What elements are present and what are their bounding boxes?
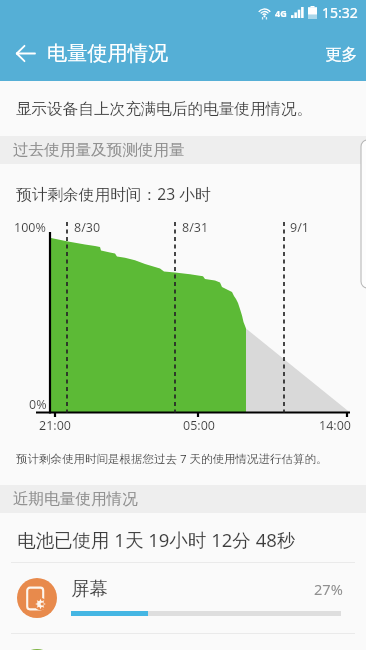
- staticText: 0%: [29, 396, 47, 413]
- staticText: 过去使用量及预测使用量: [13, 140, 185, 160]
- staticText: 8/30: [74, 219, 101, 236]
- staticText: 27%: [314, 579, 343, 599]
- staticText: 15:32: [322, 3, 358, 22]
- staticText: 显示设备自上次充满电后的电量使用情况。: [16, 99, 313, 119]
- staticText: 预计剩余使用时间：23 小时: [16, 183, 211, 204]
- staticText: 预计剩余使用时间是根据您过去 7 天的使用情况进行估算的。: [16, 451, 328, 467]
- staticText: 4G: [275, 7, 287, 19]
- staticText: 屏幕: [71, 577, 108, 600]
- button[interactable]: 更多: [317, 36, 366, 72]
- staticText: 100%: [14, 219, 46, 236]
- button[interactable]: 屏幕: [0, 563, 366, 633]
- staticText: 近期电量使用情况: [13, 489, 138, 509]
- staticText: 14:00: [319, 417, 351, 434]
- staticText: 电量使用情况: [47, 41, 169, 66]
- staticText: 8/31: [182, 219, 209, 236]
- staticText: 9/1: [290, 219, 309, 236]
- staticText: 21:00: [39, 417, 71, 434]
- staticText: 电池已使用 1天 19小时 12分 48秒: [17, 527, 296, 552]
- staticText: 05:00: [183, 417, 215, 434]
- button[interactable]: Back: [5, 33, 45, 73]
- staticText: 更多: [325, 44, 358, 64]
